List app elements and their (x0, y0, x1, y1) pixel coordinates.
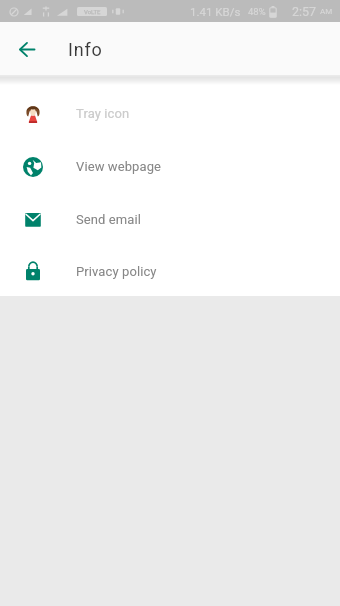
staticText: Privacy policy (76, 264, 157, 279)
button[interactable]: Back (5, 27, 49, 71)
button[interactable]: Send email (0, 193, 340, 246)
staticText: 2:57 (292, 4, 317, 19)
staticText: Send email (76, 212, 142, 227)
staticText: 48% (248, 6, 266, 17)
staticText: Tray icon (76, 106, 130, 121)
staticText: VoLTE (84, 8, 101, 15)
staticText: View webpage (76, 159, 162, 174)
staticText: AM (320, 7, 333, 16)
button[interactable]: View webpage (0, 140, 340, 193)
staticText: 1.41 KB/s (190, 5, 241, 18)
button[interactable]: Tray icon (0, 87, 340, 140)
staticText: Info (68, 39, 103, 60)
button[interactable]: Privacy policy (0, 246, 340, 296)
